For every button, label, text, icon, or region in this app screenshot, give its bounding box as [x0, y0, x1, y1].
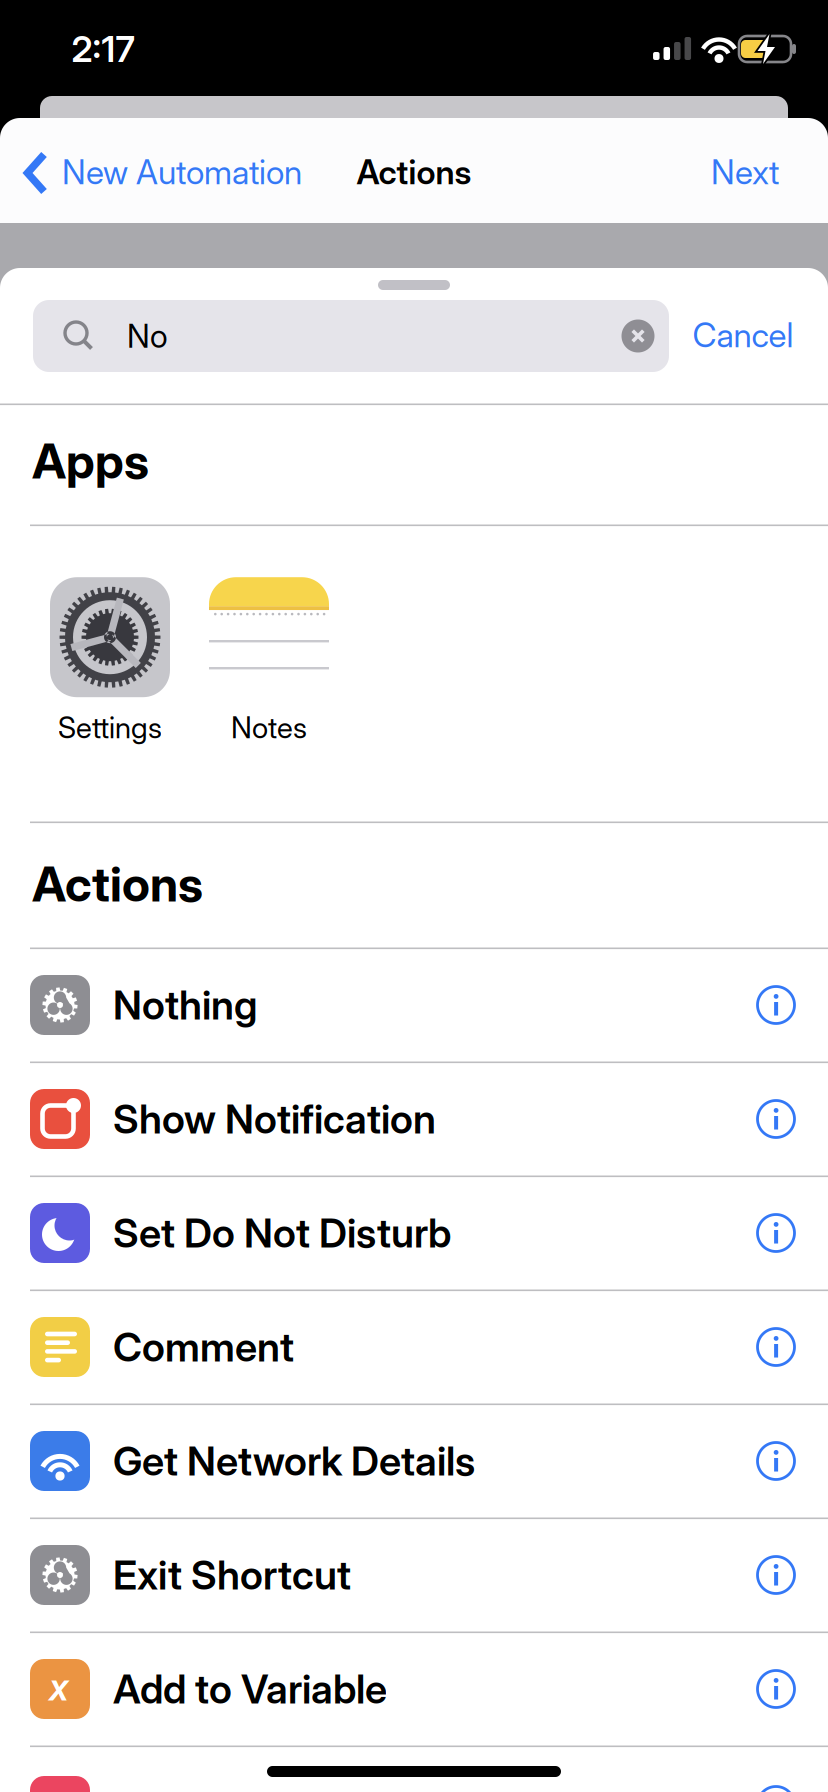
button[interactable]: Cancel — [678, 300, 808, 370]
button[interactable]: x — [30, 1632, 740, 1745]
staticText: Next — [711, 152, 779, 192]
staticText: Comment — [113, 1323, 294, 1371]
button[interactable]: Comment details — [757, 1328, 794, 1365]
staticText: Get Network Details — [113, 1437, 475, 1485]
staticText: Show Notification — [113, 1095, 436, 1143]
button[interactable]: Nothing — [30, 948, 740, 1061]
button[interactable]: Back, New Automation — [0, 125, 330, 221]
staticText: Exit Shortcut — [113, 1551, 351, 1599]
staticText: Settings — [58, 710, 162, 745]
button[interactable]: Exit Shortcut details — [757, 1556, 794, 1593]
staticText: Notes — [231, 710, 307, 745]
staticText: Actions — [32, 856, 203, 912]
button[interactable]: Settings — [50, 577, 170, 745]
button[interactable]: Add to Variable details — [757, 1670, 794, 1707]
button[interactable]: Search field: No — [33, 300, 669, 372]
staticText: Nothing — [113, 981, 257, 1029]
button[interactable]: Get Network Details details — [757, 1442, 794, 1479]
button[interactable]: Notes — [209, 577, 329, 745]
staticText: Add to Variable — [113, 1665, 387, 1713]
button[interactable]: Exit Shortcut — [30, 1518, 740, 1631]
staticText: No — [127, 317, 168, 355]
staticText: Set Do Not Disturb — [113, 1209, 451, 1257]
button[interactable]: Show Notification — [30, 1062, 740, 1175]
button[interactable]: Set Do Not Disturb details — [757, 1214, 794, 1251]
button[interactable]: Show Notification details — [757, 1100, 794, 1137]
staticText: Cancel — [692, 315, 793, 355]
button[interactable]: Clear search text — [621, 319, 654, 352]
button[interactable]: Get Network Details — [30, 1404, 740, 1517]
button[interactable]: Nothing details — [757, 986, 794, 1023]
staticText: Apps — [32, 433, 149, 489]
staticText: 2:17 — [71, 28, 134, 70]
button[interactable]: Comment — [30, 1290, 740, 1403]
staticText: x — [49, 1665, 69, 1709]
staticText: New Automation — [62, 152, 302, 192]
button[interactable]: Set Do Not Disturb — [30, 1176, 740, 1289]
button[interactable]: Next — [690, 137, 800, 207]
staticText: Actions — [356, 152, 471, 192]
